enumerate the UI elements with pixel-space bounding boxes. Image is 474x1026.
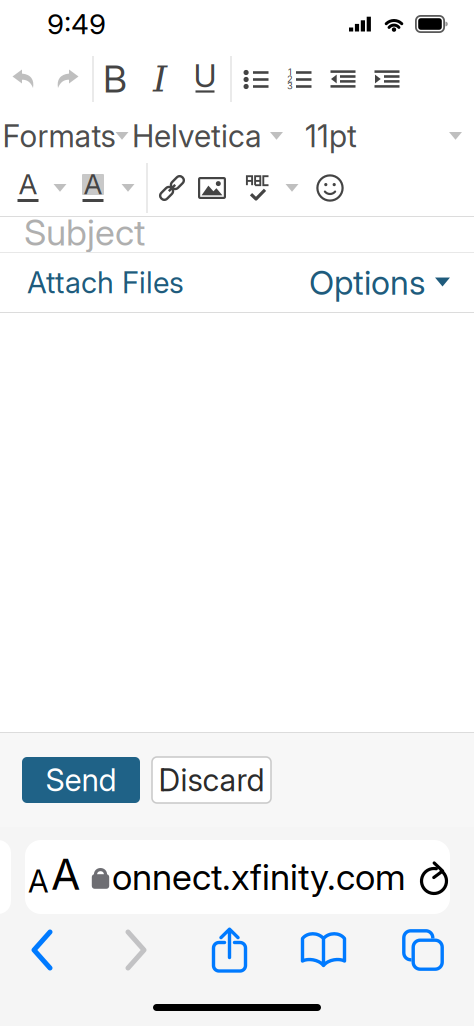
button[interactable]: Highlight colour options <box>115 161 141 215</box>
staticText: 1 <box>288 66 292 78</box>
button[interactable]: Page settings <box>11 840 91 914</box>
button[interactable]: Forward <box>86 925 184 975</box>
staticText: Discard <box>158 761 264 798</box>
button[interactable]: Decrease indent <box>323 48 363 110</box>
staticText: A <box>51 848 80 900</box>
staticText: Send <box>45 761 116 798</box>
button[interactable]: Share <box>184 925 275 975</box>
staticText: Helvetica <box>132 117 262 154</box>
button[interactable]: Insert image <box>193 161 231 215</box>
button[interactable]: Tabs <box>372 925 474 975</box>
button[interactable]: Reload <box>406 840 464 914</box>
staticText: A <box>83 167 102 201</box>
staticText: 3 <box>287 80 293 92</box>
button[interactable]: Italic <box>139 48 181 110</box>
button[interactable]: Bold <box>94 48 136 110</box>
button[interactable]: Text colour options <box>47 161 73 215</box>
button[interactable]: Bookmarks <box>275 925 372 975</box>
button[interactable]: Insert emoji <box>311 161 349 215</box>
button[interactable]: Formats <box>0 110 124 162</box>
staticText: B <box>103 56 127 102</box>
button[interactable]: Bulleted list <box>236 48 276 110</box>
staticText: A <box>18 167 37 201</box>
button[interactable]: Options <box>309 253 474 312</box>
button[interactable]: Attach Files <box>0 253 184 312</box>
button[interactable]: Back <box>0 925 86 975</box>
staticText: Options <box>309 262 426 303</box>
staticText: onnect.xfinity.com <box>112 855 406 899</box>
staticText: 11pt <box>305 117 357 154</box>
button[interactable]: Underline <box>184 48 226 110</box>
staticText: A <box>28 863 49 900</box>
staticText: I <box>153 58 167 100</box>
staticText: 9:49 <box>47 7 106 41</box>
button[interactable]: Text colour <box>11 161 45 215</box>
button[interactable]: Insert link <box>153 161 191 215</box>
button[interactable]: Helvetica <box>124 110 291 162</box>
staticText: Attach Files <box>27 265 184 300</box>
button[interactable]: Send <box>22 757 140 803</box>
button[interactable]: Undo <box>2 48 46 110</box>
button[interactable]: Increase indent <box>367 48 407 110</box>
staticText: Formats <box>2 117 115 154</box>
button[interactable]: Highlight colour <box>76 161 110 215</box>
staticText: U <box>193 56 216 95</box>
button[interactable]: 11pt <box>291 110 474 162</box>
staticText: 2 <box>287 73 293 85</box>
button[interactable]: Spellcheck options <box>279 161 305 215</box>
button[interactable]: Numbered list <box>279 48 319 110</box>
button[interactable]: Redo <box>45 48 89 110</box>
staticText: Subject <box>24 211 145 254</box>
button[interactable]: Discard <box>152 757 271 803</box>
button[interactable]: Spellcheck <box>240 161 278 215</box>
